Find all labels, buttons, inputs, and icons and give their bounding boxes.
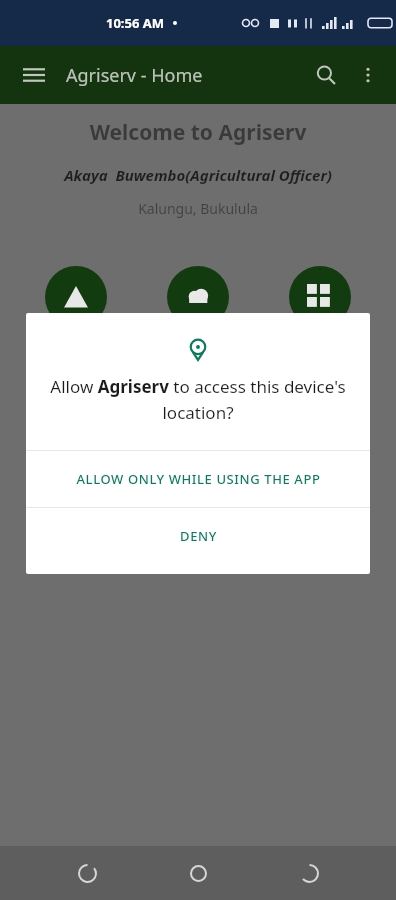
staticText: Logout	[298, 444, 342, 462]
button[interactable]: Dashboard	[266, 266, 374, 354]
staticText: Welcome to Agriserv	[0, 118, 396, 147]
staticText: Kalungu, Bukulula	[0, 199, 396, 218]
button[interactable]: Weather Advisory	[144, 266, 252, 354]
staticText: ALLOW ONLY WHILE USING THE APP	[76, 470, 321, 488]
staticText: 10:56 AM	[106, 14, 165, 32]
button[interactable]: Search	[304, 53, 348, 97]
staticText: Allow Agriserv to access this device's l…	[44, 375, 352, 424]
staticText: Weather Advisory	[144, 336, 252, 354]
button[interactable]: More options	[348, 55, 388, 95]
staticText: Settings	[173, 444, 223, 462]
button[interactable]: DENY	[26, 508, 370, 564]
button[interactable]: Back	[285, 849, 333, 897]
button[interactable]: Home	[174, 849, 222, 897]
staticText: DENY	[180, 527, 217, 545]
button[interactable]: Logout	[266, 374, 374, 462]
button[interactable]: Settings	[144, 374, 252, 462]
button[interactable]: Outbreaks	[22, 266, 130, 354]
staticText: Agriserv - Home	[66, 63, 203, 88]
button[interactable]: Menu	[14, 55, 54, 95]
staticText: Akaya Buwembo(Agricultural Officer)	[0, 165, 396, 185]
button[interactable]: Recent apps	[63, 849, 111, 897]
button[interactable]: ALLOW ONLY WHILE USING THE APP	[26, 451, 370, 507]
button[interactable]: My Profile	[22, 374, 130, 462]
staticText: My Profile	[45, 444, 107, 462]
